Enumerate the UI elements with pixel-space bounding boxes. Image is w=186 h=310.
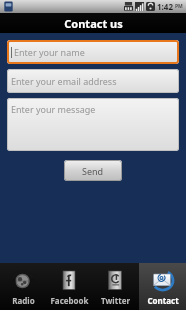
button[interactable]: Send <box>64 160 122 181</box>
staticText: Contact us <box>64 16 123 31</box>
button[interactable]: Enter your message <box>7 98 179 151</box>
staticText: PM <box>175 3 183 10</box>
staticText: Send <box>82 165 104 177</box>
staticText: Enter your email address <box>11 75 117 87</box>
staticText: Twitter <box>101 295 130 306</box>
staticText: Contact <box>147 295 179 306</box>
button[interactable]: Radio <box>0 263 46 310</box>
staticText: 1:42 <box>157 1 173 12</box>
button[interactable]: Facebook <box>46 263 92 310</box>
button[interactable]: Enter your email address <box>7 69 179 93</box>
staticText: Enter your message <box>11 103 96 115</box>
button[interactable]: Twitter <box>92 263 139 310</box>
staticText: Enter your name <box>14 46 85 58</box>
button[interactable]: Contact <box>139 263 186 310</box>
button[interactable]: Enter your name <box>7 40 179 64</box>
staticText: Facebook <box>50 295 89 306</box>
staticText: Radio <box>12 295 35 306</box>
